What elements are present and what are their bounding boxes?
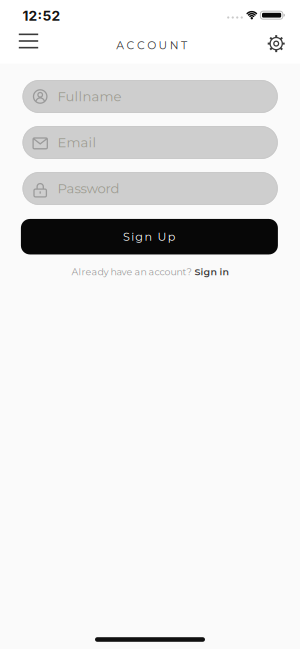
staticText: T [181, 39, 187, 52]
staticText: p [168, 230, 176, 244]
staticText: C [137, 39, 145, 52]
staticText: N [170, 39, 179, 52]
staticText: U [158, 230, 167, 244]
textField[interactable]: Fullname [57, 88, 266, 105]
staticText: Already have an account? [71, 266, 191, 277]
button[interactable]: Sign in [194, 266, 228, 277]
staticText: Sign in [194, 266, 228, 277]
staticText: g [135, 230, 143, 244]
button[interactable]: S [21, 219, 278, 254]
staticText: Password [57, 180, 119, 197]
staticText: i [131, 230, 134, 244]
staticText: n [144, 230, 152, 244]
staticText: A [116, 39, 124, 52]
textField[interactable]: Email [57, 134, 266, 151]
staticText: S [123, 230, 130, 244]
secureTextField[interactable]: Password [57, 180, 266, 197]
staticText: C [127, 39, 135, 52]
staticText: O [147, 39, 156, 52]
button[interactable]: Settings [266, 34, 286, 54]
staticText: Fullname [57, 88, 121, 105]
staticText: 12:52 [23, 7, 61, 24]
staticText: Email [57, 134, 96, 151]
staticText: U [158, 39, 167, 52]
button[interactable]: Menu [16, 32, 40, 50]
